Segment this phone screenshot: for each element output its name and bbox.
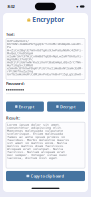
button[interactable]: Decrypt — [47, 101, 85, 112]
staticText: Copy to clipboard — [31, 173, 65, 179]
staticText: Encrypt — [19, 104, 35, 109]
staticText: Encryptor — [32, 15, 64, 24]
staticText: Password: — [6, 81, 25, 86]
staticText: Decrypt — [60, 104, 76, 109]
staticText: U2FsdGVkX1/KhY6NlJkW8oPbTgqQ3rYzVnMc1EdW… — [7, 40, 84, 76]
staticText: 8:32 — [7, 4, 14, 9]
staticText: Text: — [6, 31, 15, 37]
staticText: Result: — [6, 115, 20, 120]
staticText: Lorem ipsum dolor sit amet, consectetur … — [7, 123, 69, 160]
button[interactable]: Copy to clipboard — [6, 171, 85, 181]
button[interactable]: Encrypt — [6, 101, 44, 112]
staticText: ▾ — [76, 4, 78, 9]
